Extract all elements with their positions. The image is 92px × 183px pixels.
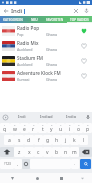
button[interactable]: b [52,147,61,157]
staticText: z [18,149,21,156]
button[interactable]: 0 [83,123,92,133]
staticText: q [3,126,7,133]
staticText: Radio Mix [17,40,39,46]
button[interactable]: 8 [65,123,74,133]
button[interactable]: Voice search [81,5,92,16]
staticText: o [77,126,81,133]
button[interactable]: a [4,135,14,145]
button[interactable]: Stadium FM [0,53,92,68]
button[interactable]: Adventure Klock FM [0,68,92,83]
staticText: Pop [17,32,46,37]
staticText: Ghana [46,32,78,37]
staticText: h [55,137,59,144]
button[interactable]: Hide keyboard [73,173,92,183]
button[interactable]: 7 [56,123,65,133]
button[interactable]: 1 [0,123,10,133]
button[interactable]: Recents [49,173,73,183]
button[interactable]: s [14,135,24,145]
button[interactable]: FAVORITEN [42,16,67,23]
button[interactable]: k [70,135,79,145]
staticText: 6 [51,123,53,126]
staticText: r [32,126,35,133]
button[interactable]: , [14,159,22,169]
staticText: 4 [33,123,35,126]
staticText: Auckland [17,62,46,67]
staticText: e [23,126,26,133]
button[interactable]: c [34,147,43,157]
button[interactable]: Home [25,173,49,183]
staticText: NEU [31,18,38,22]
button[interactable]: f [34,135,43,145]
staticText: Auckland [17,47,46,52]
button[interactable]: 5 [38,123,47,133]
staticText: ?123 [4,162,11,166]
button[interactable]: Search [80,159,91,169]
button[interactable]: n [61,147,70,157]
staticText: Adventure Klock FM [17,70,61,76]
button[interactable]: Add favorite [78,40,90,52]
button[interactable]: ?123 [0,159,14,169]
button[interactable]: Google [0,112,10,122]
staticText: Indi [11,7,23,15]
button[interactable]: . [71,159,79,169]
staticText: d [27,137,31,144]
button[interactable]: 3 [20,123,29,133]
button[interactable]: 9 [74,123,83,133]
button[interactable]: 2 [10,123,20,133]
staticText: Ghana [46,62,78,67]
button[interactable]: Add favorite [78,70,90,82]
staticText: v [46,149,49,156]
staticText: m [72,149,77,156]
staticText: FAVORITEN [46,18,64,22]
button[interactable]: g [43,135,52,145]
staticText: x [28,149,31,156]
staticText: w [13,126,17,133]
button[interactable]: Indiad [34,112,59,122]
button[interactable]: v [43,147,52,157]
button[interactable]: j [61,135,70,145]
staticText: . [74,161,76,167]
button[interactable]: Radio Pop [0,23,92,38]
button[interactable]: Key [22,159,30,169]
staticText: k [73,137,76,144]
staticText: 8 [69,123,71,126]
staticText: Ghana [46,47,78,52]
button[interactable]: d [24,135,34,145]
staticText: Stadium FM [17,55,44,61]
button[interactable]: Key [79,147,92,157]
button[interactable]: Add favorite [78,55,90,67]
button[interactable]: h [52,135,61,145]
staticText: i [69,126,71,133]
staticText: s [18,137,21,144]
staticText: u [59,126,63,133]
button[interactable]: Radio Mix [0,38,92,53]
button[interactable]: m [70,147,79,157]
staticText: a [8,137,11,144]
button[interactable]: NEU [26,16,42,23]
button[interactable]: 4 [29,123,38,133]
button[interactable]: Remove favorite [78,25,90,37]
button[interactable]: Clear [71,6,81,16]
button[interactable]: l [79,135,88,145]
staticText: t [42,126,44,133]
staticText: TOP RADIOS [70,18,89,22]
button[interactable]: z [14,147,24,157]
button[interactable]: Back [0,173,25,183]
staticText: 0 [87,123,89,126]
button[interactable]: Indi [11,5,71,16]
button[interactable]: x [24,147,34,157]
button[interactable]: KATEGORIEN [0,16,26,23]
button[interactable]: Indi [10,112,34,122]
button[interactable]: 6 [47,123,56,133]
staticText: 7 [60,123,62,126]
button[interactable]: Key [0,147,14,157]
button[interactable]: Back [0,5,11,16]
button[interactable]: Indio [59,112,84,122]
staticText: Ghana [46,77,78,82]
staticText: Indiad [40,114,53,120]
staticText: KATEGORIEN [3,18,23,22]
staticText: 9 [78,123,80,126]
button[interactable]: TOP RADIOS [67,16,92,23]
button[interactable]: Voice input [84,112,92,122]
